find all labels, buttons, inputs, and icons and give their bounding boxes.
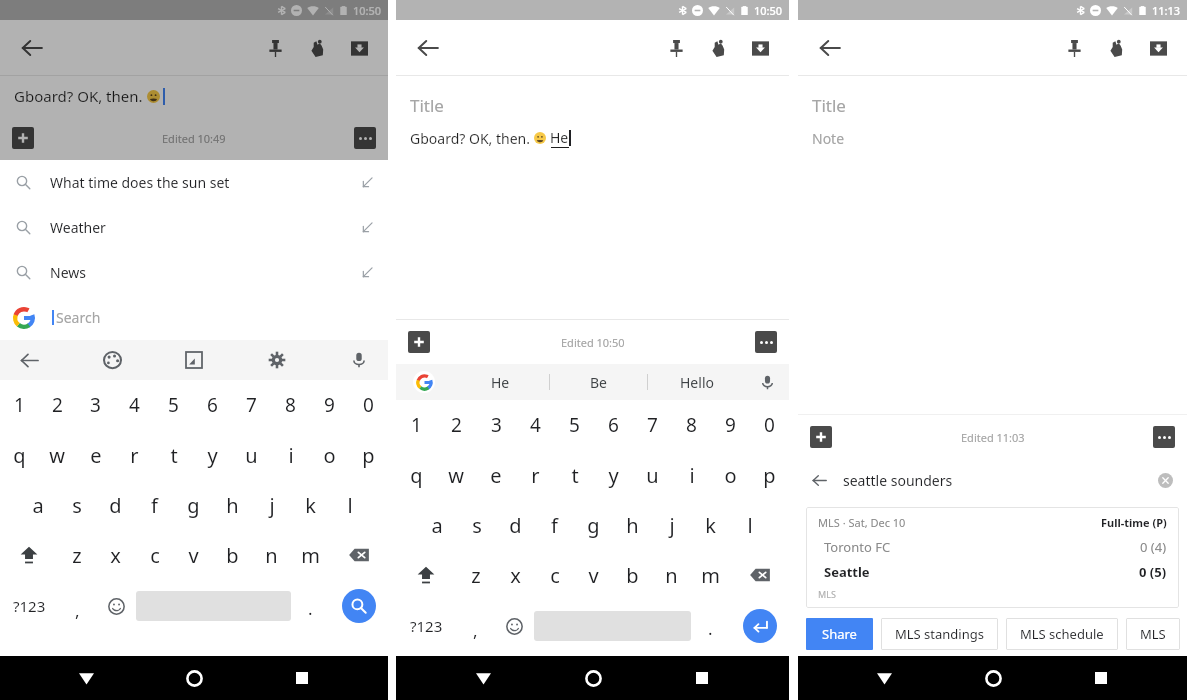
button[interactable]: What time does the sun set (0, 160, 388, 205)
button[interactable]: Home (571, 656, 615, 700)
button[interactable]: 1 (0, 380, 38, 430)
button[interactable]: Pin (1053, 27, 1095, 69)
button[interactable]: Back (64, 656, 108, 700)
button[interactable]: Back (862, 656, 906, 700)
button[interactable]: s (57, 480, 96, 530)
button[interactable]: x (96, 530, 135, 580)
button[interactable]: ?123 (396, 600, 456, 652)
button[interactable]: 9 (310, 380, 349, 430)
button[interactable]: Home (971, 656, 1015, 700)
button[interactable]: j (652, 500, 691, 550)
button[interactable]: 9 (711, 400, 750, 450)
button[interactable]: w (38, 430, 76, 480)
button[interactable]: r (115, 430, 154, 480)
button[interactable]: 8 (672, 400, 711, 450)
button[interactable]: Reminder (697, 27, 739, 69)
button[interactable]: l (730, 500, 769, 550)
button[interactable]: n (652, 550, 691, 600)
button[interactable]: Recents (280, 656, 324, 700)
button[interactable]: g (174, 480, 213, 530)
button[interactable]: k (291, 480, 330, 530)
button[interactable]: l (330, 480, 369, 530)
button[interactable]: Hello (648, 364, 745, 400)
button[interactable]: d (96, 480, 135, 530)
button[interactable]: MLS standings (881, 618, 998, 650)
button[interactable]: , (456, 600, 495, 652)
button[interactable]: u (633, 450, 672, 500)
button[interactable]: o (711, 450, 750, 500)
button[interactable]: Pin (254, 27, 296, 69)
button[interactable]: y (193, 430, 232, 480)
button[interactable]: v (574, 550, 613, 600)
button[interactable]: z (57, 530, 96, 580)
button[interactable]: MLS schedule (1006, 618, 1118, 650)
button[interactable]: Shift (396, 550, 456, 600)
button[interactable]: Back (461, 656, 505, 700)
button[interactable]: Home (172, 656, 216, 700)
button[interactable]: Recents (680, 656, 724, 700)
button[interactable]: 5 (555, 400, 594, 450)
button[interactable]: , (58, 580, 97, 632)
button[interactable]: Back (10, 341, 48, 379)
button[interactable]: 6 (193, 380, 232, 430)
button[interactable]: d (496, 500, 535, 550)
button[interactable]: q (0, 430, 38, 480)
button[interactable]: Shift (0, 530, 57, 580)
button[interactable]: Add (408, 331, 430, 353)
button[interactable]: c (135, 530, 174, 580)
button[interactable]: n (252, 530, 291, 580)
button[interactable]: x (496, 550, 535, 600)
button[interactable]: Pin (655, 27, 697, 69)
button[interactable]: Recents (1079, 656, 1123, 700)
button[interactable]: e (476, 450, 516, 500)
button[interactable]: s (457, 500, 496, 550)
button[interactable]: w (436, 450, 476, 500)
button[interactable]: Search (342, 589, 376, 623)
button[interactable]: MLS · Sat, Dec 10 (806, 507, 1179, 608)
button[interactable]: MLS (1126, 618, 1180, 650)
button[interactable]: i (271, 430, 310, 480)
button[interactable]: He (452, 364, 549, 400)
button[interactable]: Settings (258, 341, 296, 379)
button[interactable]: q (396, 450, 436, 500)
button[interactable]: m (291, 530, 330, 580)
button[interactable]: Enter (743, 609, 777, 643)
button[interactable]: h (213, 480, 252, 530)
button[interactable]: 5 (154, 380, 193, 430)
button[interactable]: Backspace (330, 530, 388, 580)
button[interactable]: Add (810, 426, 832, 448)
button[interactable]: Back (810, 28, 850, 68)
button[interactable]: 3 (76, 380, 115, 430)
button[interactable]: 2 (38, 380, 76, 430)
button[interactable]: seattle sounders (798, 459, 1187, 501)
button[interactable]: Emoji (495, 600, 534, 652)
button[interactable]: 1 (396, 400, 436, 450)
button[interactable]: Add (12, 127, 34, 149)
button[interactable]: f (535, 500, 574, 550)
button[interactable]: News (0, 250, 388, 295)
button[interactable]: Reminder (1095, 27, 1137, 69)
button[interactable]: Back (408, 28, 448, 68)
button[interactable]: 7 (232, 380, 271, 430)
button[interactable]: Themes (93, 341, 131, 379)
button[interactable]: Backspace (730, 550, 789, 600)
button[interactable]: 4 (516, 400, 555, 450)
button[interactable]: y (594, 450, 633, 500)
button[interactable]: Google (396, 364, 452, 400)
button[interactable]: e (76, 430, 115, 480)
button[interactable]: 0 (750, 400, 789, 450)
button[interactable]: v (174, 530, 213, 580)
button[interactable]: 6 (594, 400, 633, 450)
button[interactable]: f (135, 480, 174, 530)
button[interactable]: h (613, 500, 652, 550)
button[interactable]: 8 (271, 380, 310, 430)
button[interactable]: Back (12, 28, 52, 68)
button[interactable]: m (691, 550, 730, 600)
button[interactable]: 3 (476, 400, 516, 450)
button[interactable]: Voice input (745, 364, 789, 400)
button[interactable]: Emoji (97, 580, 136, 632)
button[interactable]: . (291, 580, 330, 632)
button[interactable]: More options (755, 331, 777, 353)
